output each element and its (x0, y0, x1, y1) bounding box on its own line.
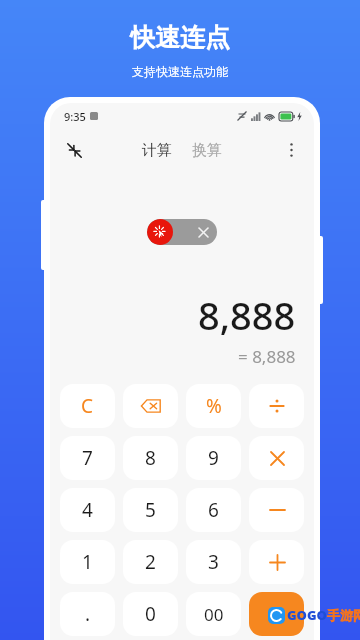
button[interactable]: Plus (249, 540, 304, 584)
staticText: 5 (145, 497, 156, 523)
staticText: C (81, 393, 94, 419)
button[interactable]: 0 (123, 592, 178, 636)
button[interactable]: More options (276, 135, 306, 165)
other: Multiply (266, 447, 288, 469)
staticText: 4 (82, 497, 93, 523)
staticText: 3 (208, 549, 219, 575)
button[interactable]: 7 (60, 436, 115, 480)
staticText: 00 (204, 603, 224, 626)
staticText: = (271, 601, 282, 627)
button[interactable]: Close (147, 219, 217, 245)
button[interactable]: 3 (186, 540, 241, 584)
staticText: 0 (145, 601, 156, 627)
staticText: 9 (208, 445, 219, 471)
staticText: . (85, 601, 91, 627)
other: Minus (266, 499, 288, 521)
button[interactable]: Divide (249, 384, 304, 428)
staticText: 手游网 (327, 607, 360, 623)
button[interactable]: 5 (123, 488, 178, 532)
button[interactable]: Backspace (123, 384, 178, 428)
staticText: 2 (145, 549, 156, 575)
button[interactable]: 00 (186, 592, 241, 636)
button[interactable]: 计算 (138, 137, 176, 164)
staticText: GOGO (287, 606, 327, 624)
button[interactable]: . (60, 592, 115, 636)
staticText: % (206, 393, 222, 419)
button[interactable]: 2 (123, 540, 178, 584)
button[interactable]: 4 (60, 488, 115, 532)
staticText: 计算 (142, 141, 172, 160)
staticText: 6 (208, 497, 219, 523)
other: Plus (266, 551, 288, 573)
other: Divide (266, 395, 288, 417)
staticText: 7 (82, 445, 93, 471)
staticText: 快速连点 (130, 22, 230, 53)
staticText: 9:35 (64, 109, 86, 124)
staticText: 1 (82, 549, 93, 575)
staticText: 支持快速连点功能 (132, 64, 228, 79)
button[interactable]: 6 (186, 488, 241, 532)
button[interactable]: 9 (186, 436, 241, 480)
other: Backspace (140, 395, 162, 417)
button[interactable]: 换算 (188, 137, 226, 164)
button[interactable]: Collapse (58, 134, 90, 166)
button[interactable]: Minus (249, 488, 304, 532)
button[interactable]: 1 (60, 540, 115, 584)
button[interactable]: % (186, 384, 241, 428)
button[interactable]: Close (193, 222, 213, 242)
button[interactable]: 8 (123, 436, 178, 480)
staticText: 8,888 (198, 289, 296, 341)
button[interactable]: Auto click (147, 219, 173, 245)
button[interactable]: = (249, 592, 304, 636)
staticText: 换算 (192, 141, 222, 160)
button[interactable]: Multiply (249, 436, 304, 480)
button[interactable]: C (60, 384, 115, 428)
staticText: = 8,888 (238, 345, 296, 368)
staticText: 8 (145, 445, 156, 471)
